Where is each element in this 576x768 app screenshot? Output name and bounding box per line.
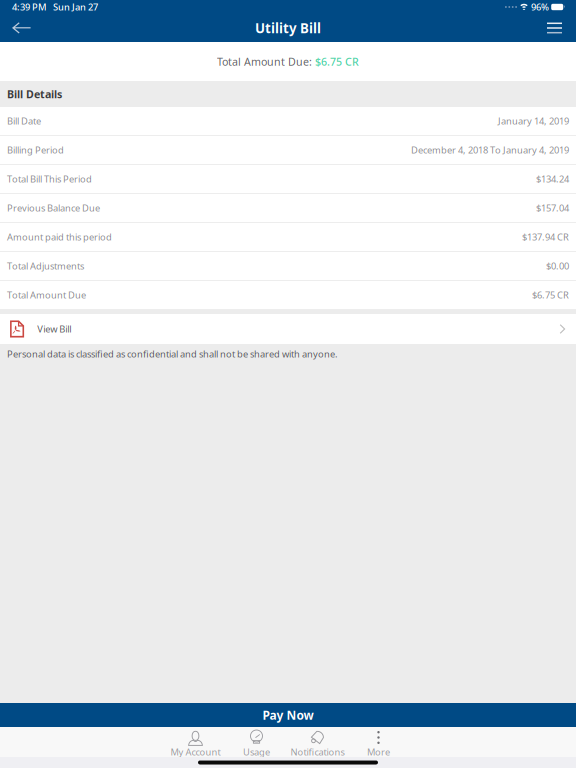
button[interactable]: Pay Now bbox=[0, 703, 576, 727]
staticText: Total Bill This Period bbox=[7, 173, 92, 185]
staticText: $6.75 CR bbox=[532, 289, 569, 301]
staticText: More bbox=[367, 746, 390, 758]
button[interactable]: Notifications bbox=[287, 726, 348, 757]
staticText: Notifications bbox=[290, 746, 344, 758]
staticText: $157.04 bbox=[536, 202, 569, 214]
staticText: January 14, 2019 bbox=[498, 115, 569, 127]
staticText: Bill Date bbox=[7, 115, 41, 127]
staticText: View Bill bbox=[37, 323, 71, 335]
staticText: Previous Balance Due bbox=[7, 202, 100, 214]
staticText: December 4, 2018 To January 4, 2019 bbox=[411, 144, 569, 156]
staticText: Utility Bill bbox=[255, 19, 321, 37]
staticText: My Account bbox=[170, 746, 220, 758]
staticText: Total Amount Due: bbox=[217, 54, 315, 69]
staticText: $0.00 bbox=[546, 260, 569, 272]
staticText: Bill Details bbox=[7, 87, 62, 101]
staticText: Total Amount Due bbox=[7, 289, 86, 301]
button[interactable]: My Account bbox=[165, 726, 226, 757]
button[interactable]: Back bbox=[0, 14, 43, 42]
staticText: Usage bbox=[243, 746, 270, 758]
staticText: Amount paid this period bbox=[7, 231, 112, 243]
staticText: $134.24 bbox=[536, 173, 569, 185]
staticText: Total Adjustments bbox=[7, 260, 84, 272]
button[interactable]: Usage bbox=[226, 726, 287, 757]
button[interactable]: Menu bbox=[533, 14, 576, 42]
staticText: 96% bbox=[531, 1, 549, 13]
staticText: $6.75 CR bbox=[315, 54, 359, 69]
staticText: Pay Now bbox=[262, 707, 313, 723]
button[interactable]: View Bill bbox=[0, 314, 576, 344]
staticText: $137.94 CR bbox=[522, 231, 569, 243]
button[interactable]: More bbox=[348, 726, 409, 757]
staticText: Personal data is classified as confident… bbox=[7, 348, 338, 360]
staticText: 4:39 PM Sun Jan 27 bbox=[12, 1, 98, 13]
staticText: Billing Period bbox=[7, 144, 64, 156]
